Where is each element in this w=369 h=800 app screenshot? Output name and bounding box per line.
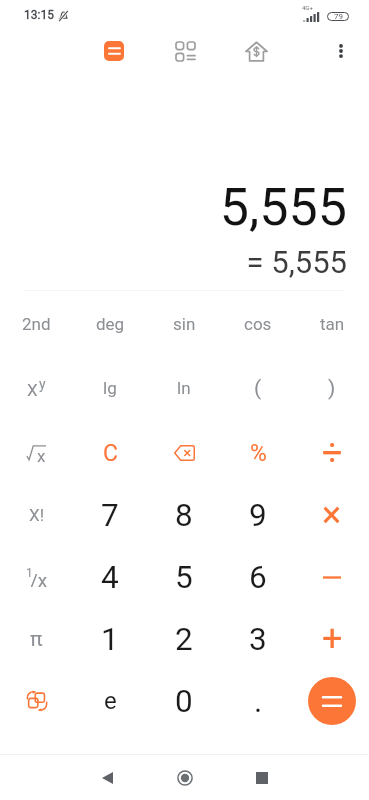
button[interactable]: Recent apps [238,756,286,800]
staticText: 6 [249,559,267,596]
staticText: 1 [26,566,33,580]
staticText: = 5,555 [246,244,347,280]
staticText: 2 [175,621,193,658]
staticText: ÷ [322,432,343,474]
button[interactable]: π [0,608,73,670]
staticText: 5,555 [219,177,347,238]
button[interactable]: 0 [147,670,221,732]
button[interactable]: sin [147,292,221,356]
button[interactable]: 3 [221,608,295,670]
staticText: ( [254,376,262,401]
button[interactable]: Backspace [147,422,221,484]
button[interactable]: % [221,422,295,484]
button[interactable]: 1 [73,608,147,670]
staticText: 2nd [22,314,51,334]
button[interactable]: 6 [221,546,295,608]
staticText: deg [96,314,125,334]
button[interactable]: lg [73,356,147,420]
button[interactable]: ln [147,356,221,420]
button[interactable]: ( [221,356,295,420]
button[interactable]: ÷ [295,422,369,484]
button[interactable]: deg [73,292,147,356]
button[interactable]: x [0,422,73,484]
button[interactable]: . [221,670,295,732]
button[interactable]: cos [221,292,295,356]
button[interactable]: 5 [147,546,221,608]
staticText: % [250,440,267,467]
staticText: 9 [249,497,267,534]
staticText: x [37,446,46,462]
staticText: 5 [175,559,193,596]
other: Convert units [19,683,55,719]
staticText: π [30,627,43,652]
staticText: lg [103,378,117,398]
button[interactable]: 8 [147,484,221,546]
button[interactable]: Back [83,756,131,800]
staticText: cos [244,314,272,334]
staticText: + [322,618,343,660]
button[interactable]: C [73,422,147,484]
staticText: 0 [175,683,193,720]
button[interactable]: Convert units [0,670,73,732]
button[interactable]: Equals [308,677,356,725]
staticText: 1 [101,621,119,658]
button[interactable]: × [295,484,369,546]
button[interactable]: 4 [73,546,147,608]
staticText: 4 [101,559,119,596]
staticText: tan [320,314,345,334]
button[interactable]: 2 [147,608,221,670]
staticText: X! [29,505,45,525]
staticText: 4G+ [302,4,313,11]
staticText: . [254,683,263,720]
staticText: C [103,440,118,467]
staticText: e [104,687,117,715]
staticText: 13:15 [24,8,54,22]
button[interactable]: 1 [0,546,73,608]
button[interactable]: X! [0,484,73,546]
staticText: 79 [334,12,343,21]
button[interactable]: Mortgage [235,30,277,72]
button[interactable]: ) [295,356,369,420]
staticText: /x [30,569,48,587]
button[interactable]: More options [321,31,361,71]
button[interactable]: X [0,356,73,420]
button[interactable]: Home [161,756,209,800]
other: Backspace [166,435,202,471]
staticText: ln [177,378,191,398]
staticText: sin [173,314,196,334]
staticText: 7 [101,497,119,534]
staticText: X [27,380,38,398]
button[interactable]: e [73,670,147,732]
staticText: y [39,376,46,392]
button[interactable]: Unit converter [164,30,206,72]
button[interactable]: Equals [295,670,369,732]
button[interactable]: 9 [221,484,295,546]
button[interactable]: + [295,608,369,670]
button[interactable]: tan [295,292,369,356]
staticText: ) [328,376,336,401]
staticText: × [322,494,342,536]
button[interactable] [295,546,369,608]
button[interactable]: 7 [73,484,147,546]
button[interactable]: Calculator [93,30,135,72]
button[interactable]: 2nd [0,292,73,356]
staticText: 8 [175,497,193,534]
staticText: 3 [249,621,267,658]
